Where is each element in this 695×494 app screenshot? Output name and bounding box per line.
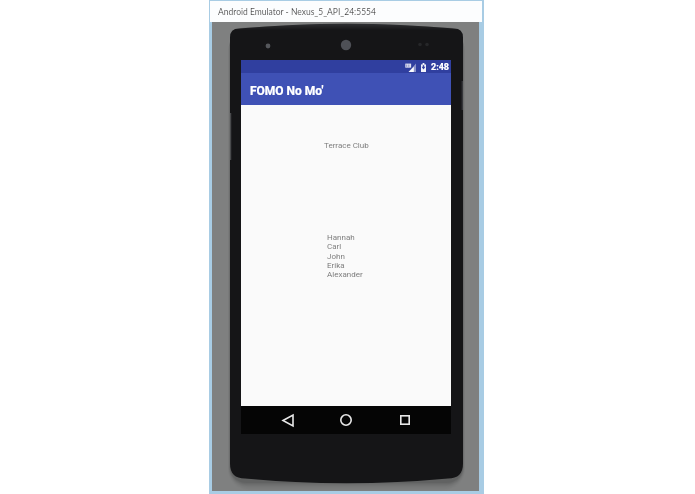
button[interactable]: Carl xyxy=(327,242,342,251)
staticText: 2:48 xyxy=(431,62,450,73)
button[interactable]: Back xyxy=(276,408,300,432)
staticText: Terrace Club xyxy=(324,141,369,150)
button[interactable]: Hannah xyxy=(327,233,355,242)
button[interactable]: Alexander xyxy=(327,270,363,279)
staticText: Android Emulator - Nexus_5_API_24:5554 xyxy=(218,7,376,17)
button[interactable]: Erika xyxy=(327,261,345,270)
button[interactable]: Recents xyxy=(393,408,417,432)
button[interactable]: Home xyxy=(334,408,358,432)
staticText: FOMO No Mo' xyxy=(250,84,324,98)
button[interactable]: John xyxy=(327,252,345,261)
